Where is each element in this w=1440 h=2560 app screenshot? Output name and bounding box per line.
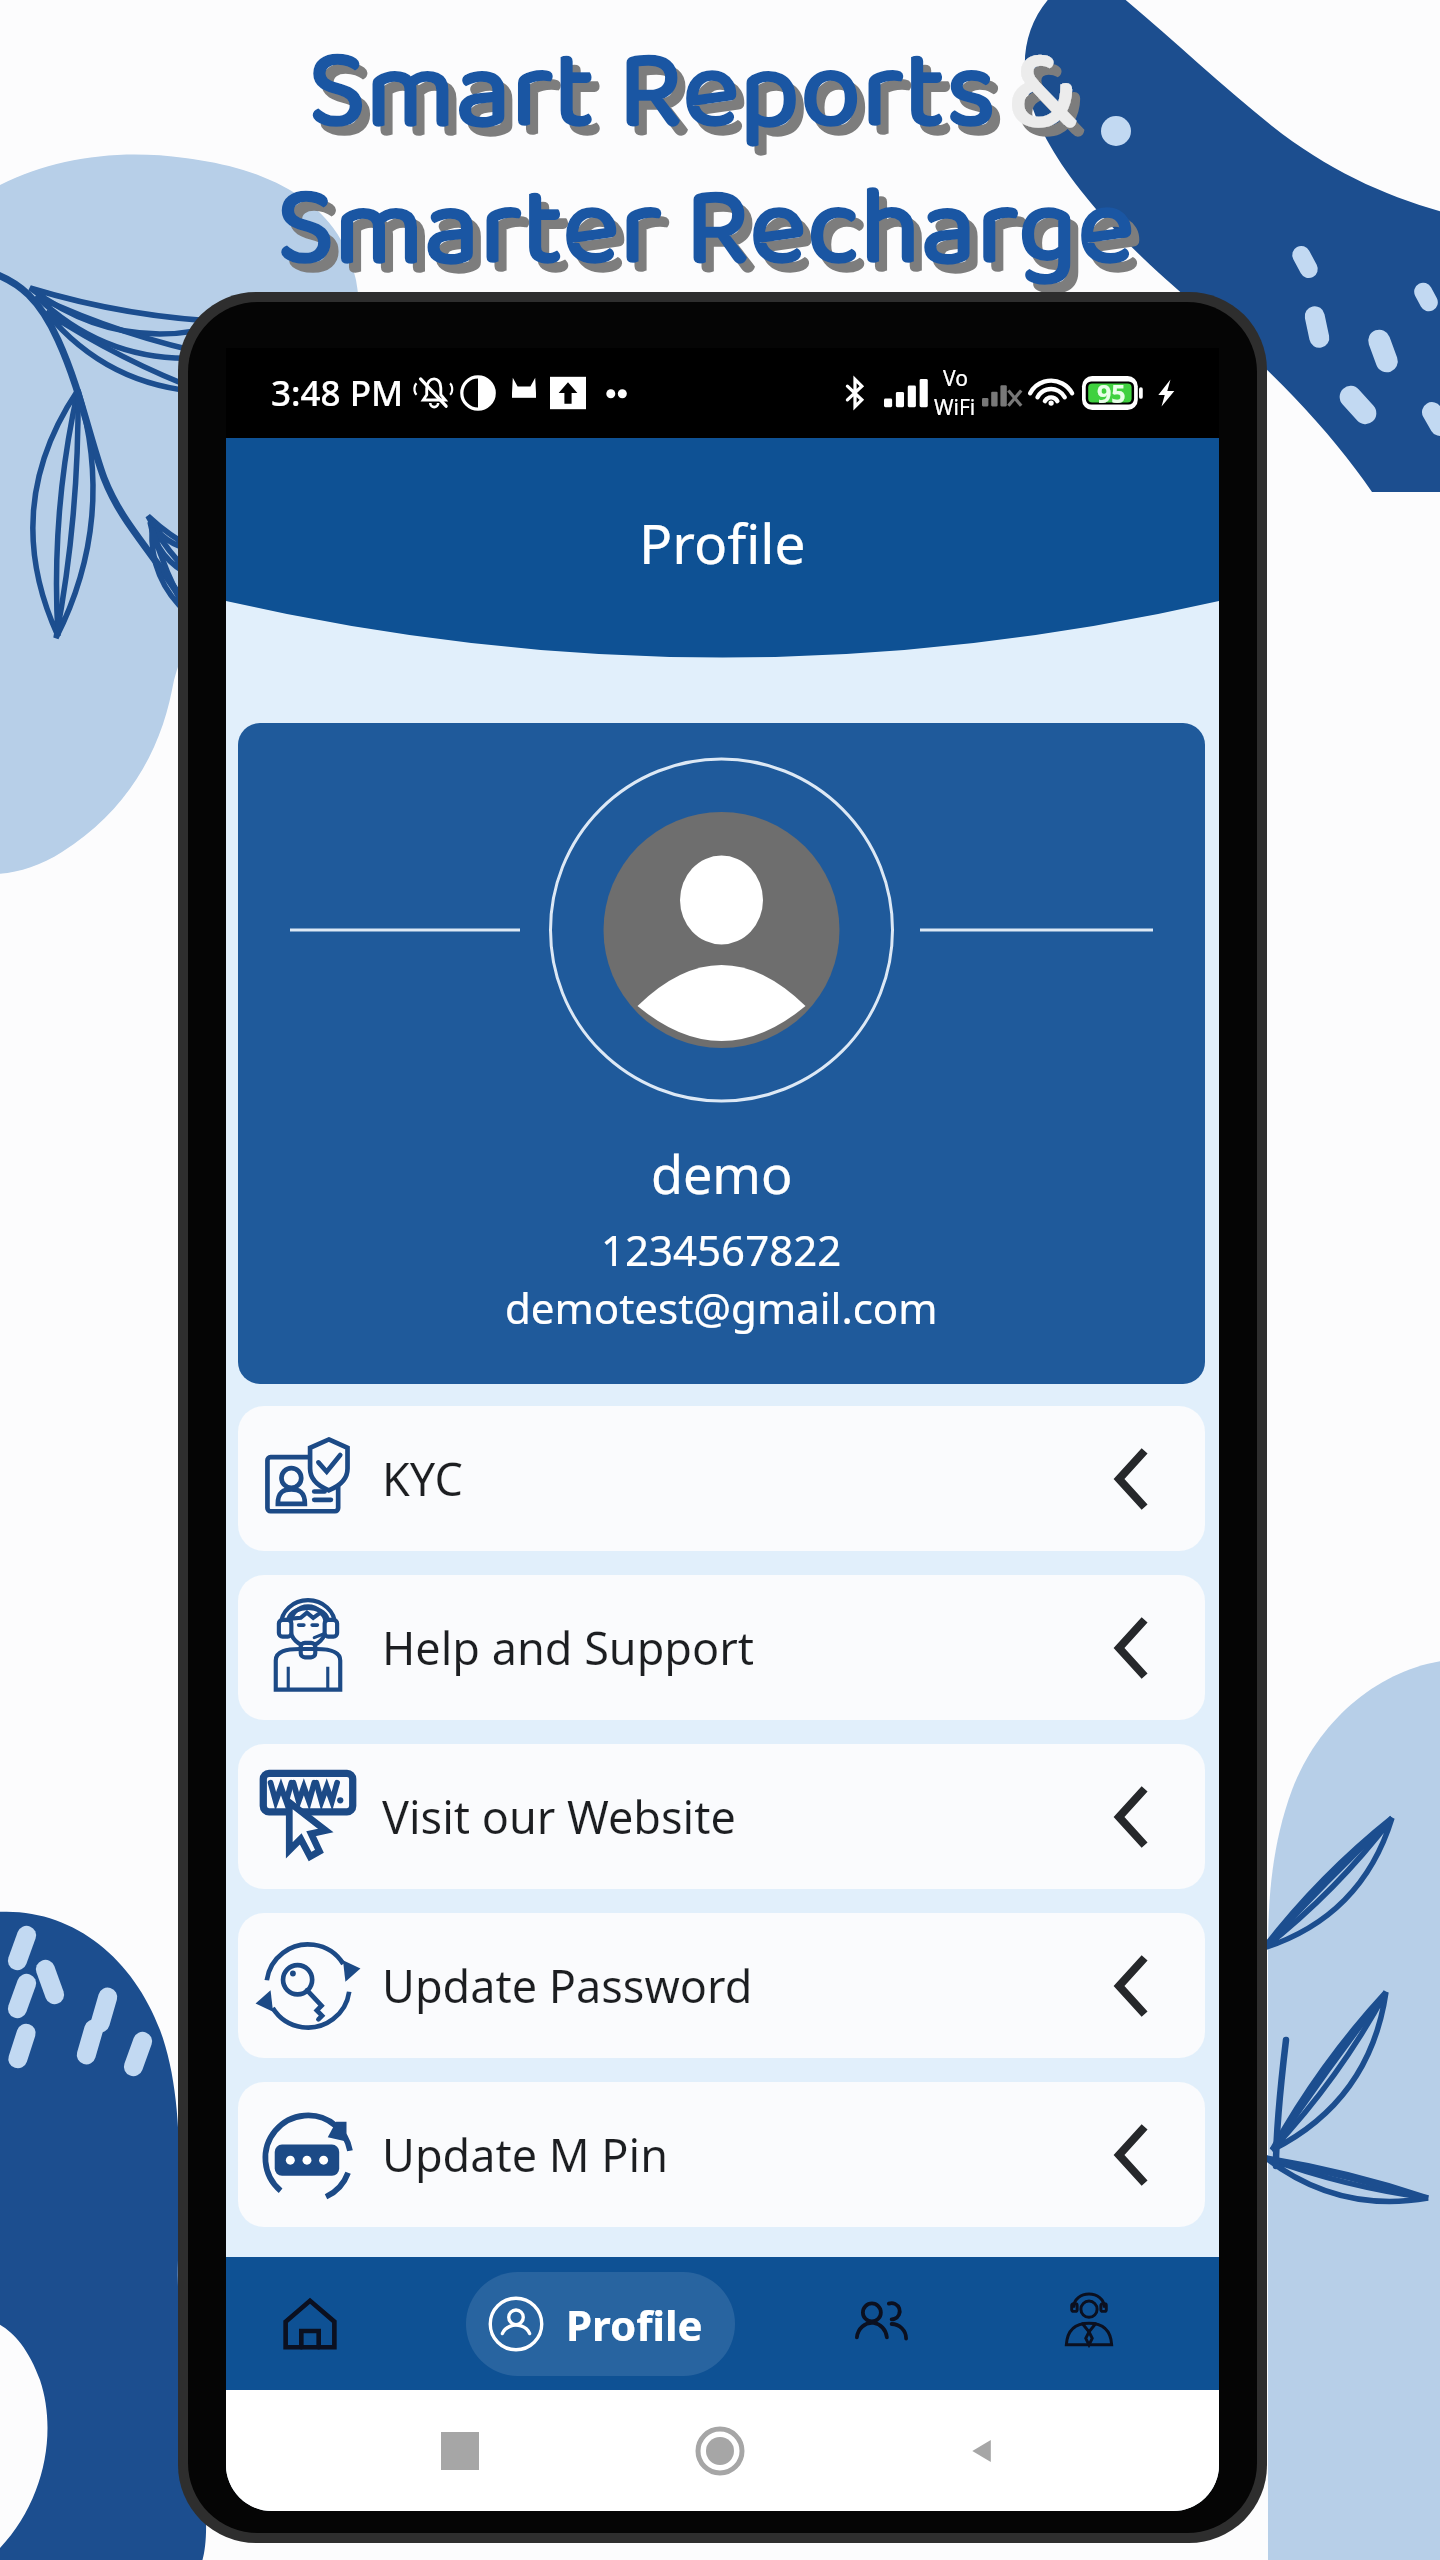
staticText: KYC bbox=[382, 1448, 463, 1509]
button[interactable]: Visit our Website bbox=[238, 1744, 1205, 1889]
staticText: Update Password bbox=[382, 1955, 753, 2016]
button[interactable]: Support bbox=[958, 2257, 1219, 2390]
staticText: demo bbox=[651, 1138, 793, 1209]
staticText: Smarter Recharge bbox=[0, 143, 1426, 318]
staticText: & bbox=[1016, 15, 1087, 190]
button[interactable]: Members bbox=[805, 2257, 958, 2390]
staticText: 3:48 PM bbox=[271, 369, 404, 417]
button[interactable]: Home bbox=[226, 2257, 395, 2390]
button[interactable]: Update M Pin bbox=[238, 2082, 1205, 2227]
staticText: Smarter Recharge bbox=[0, 152, 1434, 327]
staticText: demotest@gmail.com bbox=[505, 1279, 938, 1336]
staticText: WiFi bbox=[934, 393, 976, 422]
staticText: Visit our Website bbox=[382, 1786, 736, 1847]
button[interactable]: Profile bbox=[466, 2272, 735, 2376]
staticText: Smart Reports bbox=[297, 6, 1008, 181]
staticText: & bbox=[1008, 6, 1079, 181]
staticText: Profile bbox=[566, 2296, 703, 2353]
staticText: Help and Support bbox=[382, 1617, 755, 1678]
button[interactable]: KYC bbox=[238, 1406, 1205, 1551]
staticText: 1234567822 bbox=[601, 1221, 842, 1278]
staticText: 95 bbox=[1097, 376, 1126, 410]
button[interactable]: Update Password bbox=[238, 1913, 1205, 2058]
button[interactable]: Help and Support bbox=[238, 1575, 1205, 1720]
staticText: Vo bbox=[943, 364, 968, 393]
staticText: Profile bbox=[639, 505, 806, 580]
staticText: Smart Reports bbox=[305, 15, 1016, 190]
staticText: Update M Pin bbox=[382, 2124, 668, 2185]
